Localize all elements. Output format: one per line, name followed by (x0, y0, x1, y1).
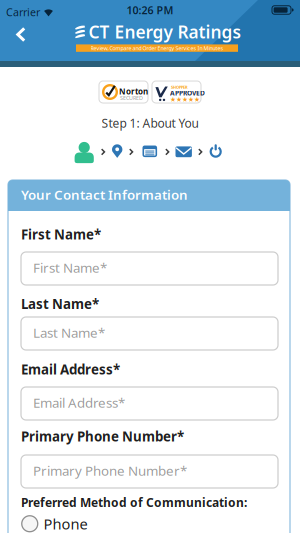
button[interactable]: First Name* (21, 252, 278, 285)
staticText: APPROVED (170, 89, 205, 97)
button[interactable]: CT Energy Ratings (72, 20, 241, 52)
staticText: Your Contact Information (21, 186, 188, 203)
staticText: Primary Phone Number* (33, 462, 187, 479)
staticText: CT Energy Ratings (88, 20, 241, 43)
staticText: Email Address* (21, 360, 120, 378)
staticText: Review, Compare and Order Energy Service… (90, 45, 223, 52)
staticText: Preferred Method of Communication: (21, 494, 247, 510)
staticText: Email Address* (33, 394, 125, 411)
button[interactable]: Last Name* (21, 317, 278, 350)
button[interactable]: Back (8, 22, 34, 46)
staticText: ★★★★★ (170, 96, 200, 103)
button[interactable]: Email Address* (21, 387, 278, 420)
staticText: Last Name* (33, 324, 105, 341)
staticText: Step 1: About You (101, 115, 198, 131)
staticText: First Name* (21, 225, 101, 243)
button[interactable]: Primary Phone Number* (21, 455, 278, 488)
staticText: Carrier (6, 5, 40, 19)
button[interactable]: Norton Secured (99, 81, 148, 103)
staticText: SHOPPER (171, 84, 188, 90)
staticText: SECURED (120, 94, 143, 102)
button[interactable]: Phone (21, 514, 87, 533)
staticText: 10:26 PM (126, 3, 173, 17)
button[interactable]: Shopper Approved (152, 81, 201, 103)
staticText: Norton (119, 86, 148, 97)
staticText: Phone (43, 514, 87, 533)
staticText: Last Name* (21, 295, 99, 313)
staticText: Primary Phone Number* (21, 427, 184, 445)
staticText: First Name* (33, 259, 107, 276)
